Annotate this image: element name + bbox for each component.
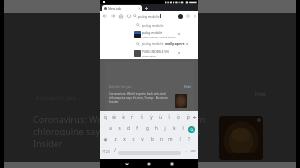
button[interactable]: New tab	[102, 5, 142, 11]
button[interactable]: g	[142, 125, 152, 131]
staticText: l	[182, 125, 184, 131]
button[interactable]: Back	[125, 162, 129, 166]
button[interactable]: f	[132, 125, 142, 131]
button[interactable]: Extensions	[186, 14, 190, 18]
staticText: t	[141, 114, 143, 120]
staticText: 6	[150, 113, 152, 116]
button[interactable]: v	[137, 136, 147, 142]
button[interactable]: y	[146, 114, 156, 120]
button[interactable]: More options	[193, 14, 197, 18]
button[interactable]: r	[127, 114, 137, 120]
button[interactable]: Article thumbnail	[175, 94, 187, 108]
button[interactable]: 4	[127, 111, 137, 117]
button[interactable]: p	[183, 114, 193, 120]
staticText: f	[136, 125, 138, 131]
staticText: Articles for you	[36, 94, 116, 101]
staticText: .	[185, 147, 187, 153]
button[interactable]: Remove suggestion	[177, 51, 181, 55]
staticText: pubg mobile	[138, 14, 160, 19]
button[interactable]: 8	[164, 111, 174, 117]
button[interactable]: Backspace	[192, 115, 197, 120]
button[interactable]: New tab	[144, 6, 149, 11]
button[interactable]: .	[181, 147, 191, 153]
staticText: q	[104, 114, 107, 120]
staticText: rn	[196, 113, 206, 125]
button[interactable]: q	[100, 114, 110, 120]
button[interactable]: pubg mobile	[100, 29, 198, 39]
staticText: Articles for you	[109, 85, 132, 89]
button[interactable]: Back	[101, 12, 109, 20]
button[interactable]: m	[165, 136, 175, 142]
staticText: x	[123, 136, 126, 142]
button[interactable]: Shift	[103, 137, 108, 142]
button[interactable]: j	[160, 125, 170, 131]
staticText: !	[179, 136, 181, 142]
button[interactable]: Forward	[109, 12, 117, 20]
staticText: Insider	[109, 100, 119, 104]
button[interactable]: .com	[188, 148, 198, 154]
staticText: v	[141, 136, 144, 142]
button[interactable]: 1	[100, 111, 110, 117]
button[interactable]: k	[169, 125, 179, 131]
button[interactable]: !	[175, 136, 185, 142]
button[interactable]: x	[119, 136, 129, 142]
button[interactable]: i	[164, 114, 174, 120]
button[interactable]: d	[123, 125, 133, 131]
staticText: ?123	[102, 149, 110, 154]
button[interactable]: c	[128, 136, 138, 142]
button[interactable]: Article image	[219, 116, 263, 160]
button[interactable]: Account	[178, 14, 183, 19]
button[interactable]: 5	[137, 111, 147, 117]
button[interactable]: s	[114, 125, 124, 131]
staticText: Insider	[33, 137, 63, 149]
button[interactable]: Remove suggestion	[185, 42, 189, 46]
button[interactable]: pubg mobile	[133, 11, 181, 21]
staticText: New tab	[108, 6, 122, 11]
staticText: 1	[104, 113, 106, 116]
button[interactable]: t	[137, 114, 147, 120]
button[interactable]: e	[118, 114, 128, 120]
button[interactable]: 0	[183, 111, 193, 117]
button[interactable]: pubg mobile	[100, 21, 198, 29]
button[interactable]: Remove suggestion	[177, 32, 181, 36]
button[interactable]: z	[110, 136, 120, 142]
button[interactable]: Reload	[125, 12, 133, 20]
button[interactable]: a	[105, 125, 115, 131]
staticText: 5	[141, 113, 143, 116]
button[interactable]: ?123	[101, 148, 111, 154]
button[interactable]: Hide	[184, 85, 191, 89]
button[interactable]: Recents	[170, 162, 174, 166]
button[interactable]: 6	[146, 111, 156, 117]
staticText: u	[159, 114, 162, 120]
button[interactable]: Home	[117, 12, 125, 20]
button[interactable]: 3	[118, 111, 128, 117]
button[interactable]: w	[109, 114, 119, 120]
button[interactable]: Hide	[255, 91, 266, 98]
button[interactable]: 9	[173, 111, 183, 117]
button[interactable]: o	[173, 114, 183, 120]
button[interactable]: /	[110, 147, 120, 153]
staticText: PUBG MOBILE VN	[142, 50, 169, 54]
button[interactable]: n	[156, 136, 166, 142]
button[interactable]: pubg mobile	[100, 39, 198, 48]
staticText: b	[151, 136, 154, 142]
button[interactable]: u	[155, 114, 165, 120]
button[interactable]: b	[147, 136, 157, 142]
staticText: n	[160, 136, 163, 142]
button[interactable]: Search	[188, 126, 195, 133]
button[interactable]: l	[178, 125, 188, 131]
button[interactable]: ?	[184, 136, 194, 142]
staticText: s	[118, 125, 121, 131]
staticText: chloroquine says it's true, Trump - Busi…	[109, 96, 168, 100]
staticText: 8	[168, 113, 170, 116]
button[interactable]: Home	[147, 162, 151, 166]
staticText: i	[168, 114, 170, 120]
staticText: 4	[131, 113, 133, 116]
button[interactable]: h	[151, 125, 161, 131]
button[interactable]: Coronavirus: Wor	[33, 113, 113, 149]
button[interactable]: Coronavirus: World experts back anti-vir…	[109, 92, 173, 104]
button[interactable]: PUBG MOBILE VN	[100, 48, 198, 58]
button[interactable]: 7	[155, 111, 165, 117]
button[interactable]: 2	[109, 111, 119, 117]
